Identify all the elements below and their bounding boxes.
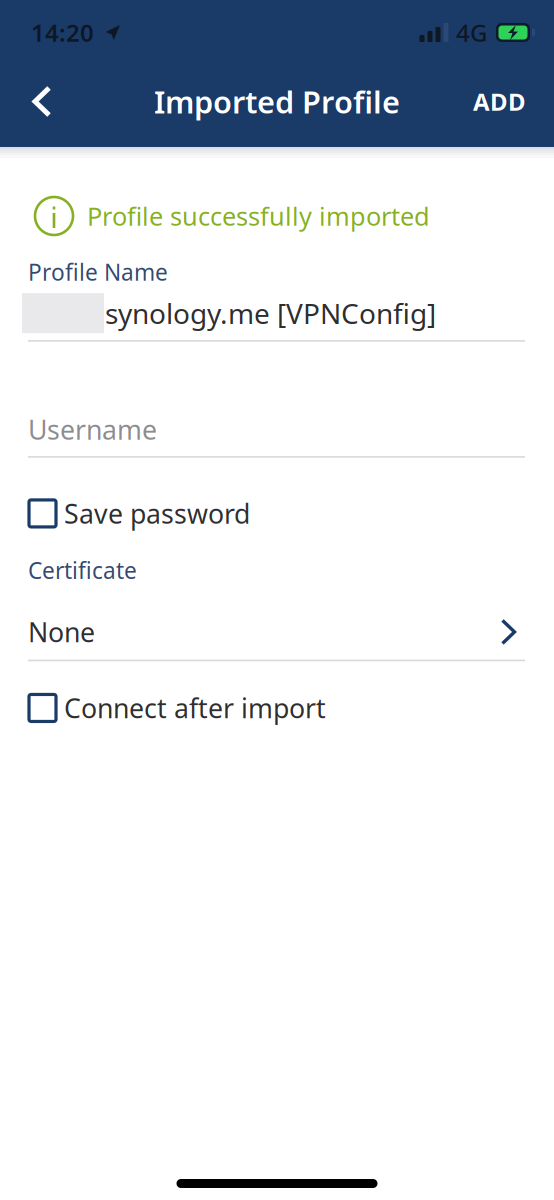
staticText: Imported Profile bbox=[154, 81, 400, 122]
button[interactable]: ADD bbox=[463, 70, 536, 132]
staticText: Username bbox=[28, 412, 157, 447]
staticText: ADD bbox=[473, 86, 526, 117]
staticText: Save password bbox=[64, 496, 250, 531]
button[interactable]: Back bbox=[18, 70, 66, 132]
staticText: Certificate bbox=[28, 555, 137, 585]
staticText: None bbox=[28, 614, 95, 650]
staticText: synology.me [VPNConfig] bbox=[105, 294, 436, 332]
button[interactable]: Save password bbox=[0, 458, 279, 531]
staticText: Connect after import bbox=[64, 690, 326, 726]
button[interactable]: Connect after import bbox=[0, 661, 355, 726]
button[interactable]: None bbox=[0, 585, 554, 650]
staticText: 4G bbox=[456, 17, 487, 48]
staticText: Profile Name bbox=[28, 257, 168, 287]
staticText: Profile successfully imported bbox=[87, 199, 430, 233]
staticText: 14:20 bbox=[31, 17, 94, 48]
